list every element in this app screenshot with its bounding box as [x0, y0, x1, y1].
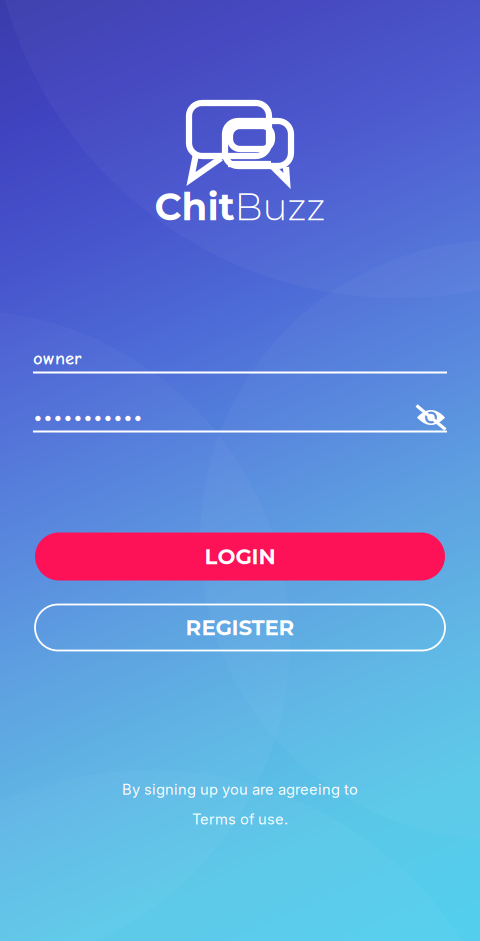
staticText: Buzz: [234, 184, 325, 229]
button[interactable]: Terms of use.: [192, 810, 288, 828]
button[interactable]: REGISTER: [35, 604, 445, 650]
staticText: •••••••••••: [33, 407, 143, 428]
staticText: owner: [33, 348, 82, 369]
staticText: Terms of use.: [192, 810, 288, 828]
staticText: REGISTER: [185, 614, 294, 640]
staticText: By signing up you are agreeing to: [122, 780, 358, 798]
button[interactable]: Show password: [415, 405, 447, 430]
staticText: LOGIN: [204, 543, 275, 569]
button[interactable]: LOGIN: [35, 532, 445, 580]
staticText: Chit: [154, 184, 234, 229]
